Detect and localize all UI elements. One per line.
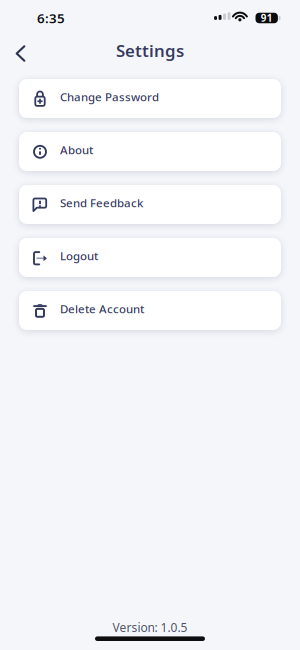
staticText: Settings bbox=[116, 39, 184, 62]
button[interactable]: About bbox=[19, 132, 281, 171]
staticText: Logout bbox=[60, 248, 98, 263]
staticText: Version: 1.0.5 bbox=[112, 619, 187, 635]
button[interactable]: Back bbox=[10, 41, 30, 65]
staticText: 6:35 bbox=[37, 9, 65, 27]
button[interactable]: Change Password bbox=[19, 79, 281, 118]
staticText: Delete Account bbox=[60, 301, 144, 316]
staticText: 91 bbox=[261, 11, 273, 25]
staticText: Change Password bbox=[60, 89, 159, 104]
staticText: About bbox=[60, 142, 93, 157]
staticText: Send Feedback bbox=[60, 195, 143, 210]
button[interactable]: Send Feedback bbox=[19, 185, 281, 224]
button[interactable]: Delete Account bbox=[19, 291, 281, 330]
button[interactable]: Logout bbox=[19, 238, 281, 277]
